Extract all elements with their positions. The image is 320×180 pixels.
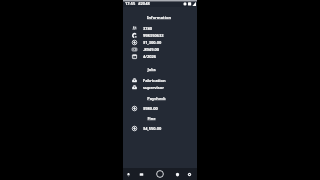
- staticText: Information: [147, 15, 171, 20]
- staticText: 998350633: [143, 33, 164, 38]
- staticText: 4/2026: [143, 54, 157, 59]
- staticText: -8949.00: [143, 47, 160, 52]
- staticText: Fabrication: [143, 78, 166, 83]
- button[interactable]: 4/2026: [123, 52, 197, 60]
- button[interactable]: $980.00: [123, 104, 197, 112]
- button[interactable]: -8949.00: [123, 45, 197, 53]
- button[interactable]: Messages: [139, 172, 144, 177]
- staticText: Jobs: [147, 67, 156, 72]
- button[interactable]: $1,300.00: [123, 38, 197, 46]
- staticText: supervisor: [143, 85, 165, 90]
- button[interactable]: Settings: [187, 172, 192, 177]
- button[interactable]: Notifications: [126, 172, 131, 177]
- staticText: 3740: [143, 26, 153, 31]
- button[interactable]: Security: [175, 172, 180, 177]
- staticText: #2048: [138, 1, 150, 6]
- staticText: $980.00: [143, 106, 158, 111]
- button[interactable]: supervisor: [123, 83, 197, 91]
- button[interactable]: Home: [156, 170, 164, 178]
- button[interactable]: 998350633: [123, 31, 197, 39]
- button[interactable]: 3740: [123, 24, 197, 32]
- button[interactable]: $4,550.00: [123, 124, 197, 132]
- button[interactable]: Fabrication: [123, 76, 197, 84]
- staticText: Paycheck: [147, 96, 166, 101]
- staticText: $1,300.00: [143, 40, 162, 45]
- staticText: Fine: [147, 116, 156, 121]
- staticText: $4,550.00: [143, 126, 162, 131]
- staticText: 17:55: [125, 1, 136, 6]
